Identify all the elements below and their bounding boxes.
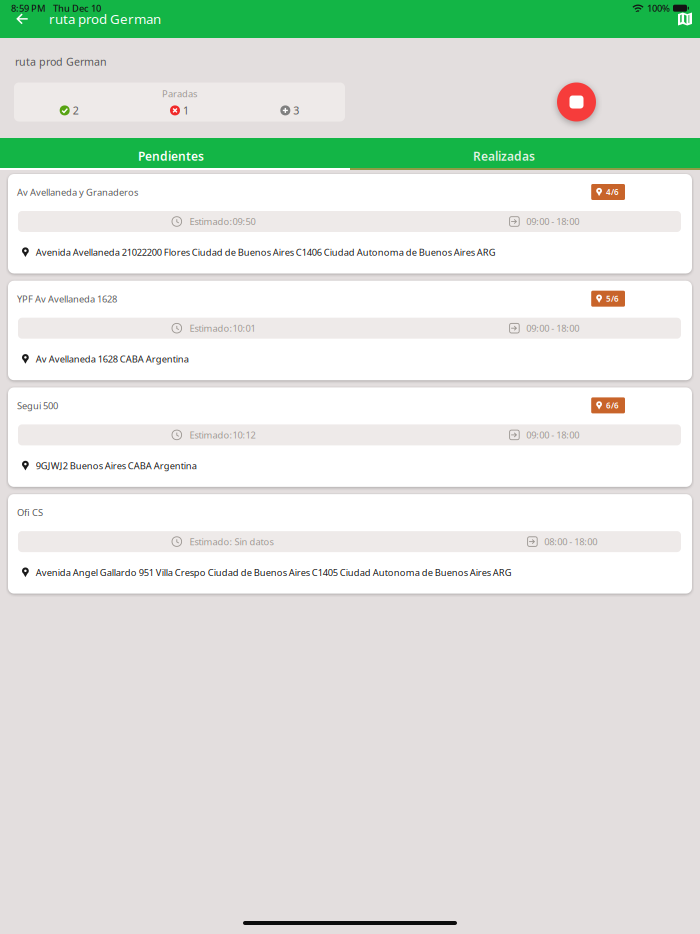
staticText: 8:59 PM [11, 2, 46, 14]
staticText: 09:00 - 18:00 [526, 215, 579, 228]
staticText: Estimado:10:01 [190, 322, 256, 334]
staticText: ruta prod German [15, 54, 107, 69]
staticText: 3 [293, 103, 299, 117]
staticText: 09:00 - 18:00 [526, 322, 579, 334]
staticText: 6/6 [606, 400, 619, 411]
button[interactable]: Map [672, 7, 698, 31]
staticText: 08:00 - 18:00 [544, 535, 597, 548]
staticText: Avenida Angel Gallardo 951 Villa Crespo … [36, 566, 512, 578]
staticText: 9GJWJ2 Buenos Aires CABA Argentina [36, 459, 197, 472]
button[interactable]: Pendientes [0, 138, 350, 170]
staticText: 100% [647, 2, 670, 14]
staticText: Segui 500 [17, 399, 58, 412]
staticText: Paradas [162, 87, 197, 100]
staticText: Pendientes [138, 148, 204, 164]
staticText: Estimado:10:12 [190, 429, 256, 441]
staticText: YPF Av Avellaneda 1628 [17, 293, 117, 305]
button[interactable]: Back [9, 7, 36, 31]
button[interactable]: Realizadas [350, 138, 700, 170]
staticText: Estimado:09:50 [190, 215, 256, 228]
button[interactable]: Stop route [549, 74, 604, 129]
staticText: Av Avellaneda y Granaderos [17, 186, 138, 198]
staticText: Ofi CS [17, 506, 43, 518]
staticText: 2 [73, 103, 79, 117]
staticText: Estimado: Sin datos [190, 535, 274, 548]
staticText: 5/6 [606, 293, 619, 304]
staticText: Av Avellaneda 1628 CABA Argentina [36, 353, 189, 365]
staticText: 09:00 - 18:00 [526, 429, 579, 441]
staticText: Avenida Avellaneda 21022200 Flores Ciuda… [36, 246, 496, 258]
staticText: Thu Dec 10 [53, 2, 101, 14]
staticText: ruta prod German [49, 10, 161, 28]
staticText: 4/6 [606, 187, 619, 197]
staticText: Realizadas [473, 148, 535, 164]
staticText: 1 [183, 103, 189, 117]
